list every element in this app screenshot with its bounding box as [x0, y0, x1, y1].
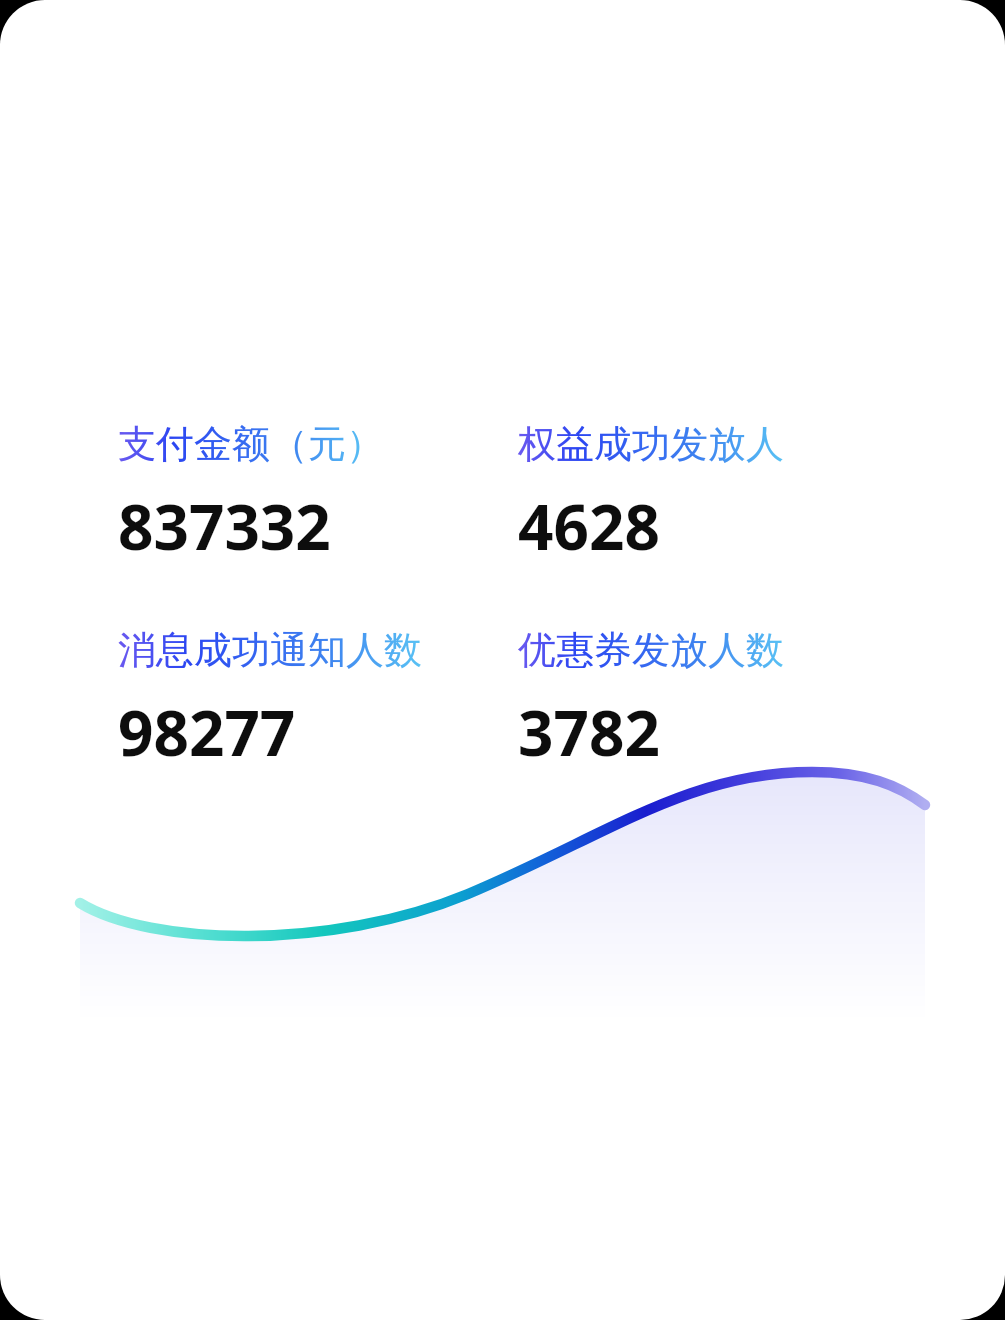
button[interactable]: 消息成功通知人数 — [118, 626, 518, 774]
button[interactable]: 优惠券发放人数 — [518, 626, 784, 674]
button[interactable]: 消息成功通知人数 — [118, 626, 422, 674]
button[interactable]: 支付金额（元） — [118, 420, 384, 468]
staticText: 3782 — [518, 690, 660, 774]
button[interactable]: 支付金额（元） — [118, 420, 518, 568]
button[interactable]: 权益成功发放人 — [518, 420, 784, 568]
button[interactable]: 权益成功发放人 — [518, 420, 784, 468]
staticText: 4628 — [518, 484, 660, 568]
staticText: 837332 — [118, 484, 331, 568]
staticText: 98277 — [118, 690, 296, 774]
button[interactable]: 优惠券发放人数 — [518, 626, 784, 774]
